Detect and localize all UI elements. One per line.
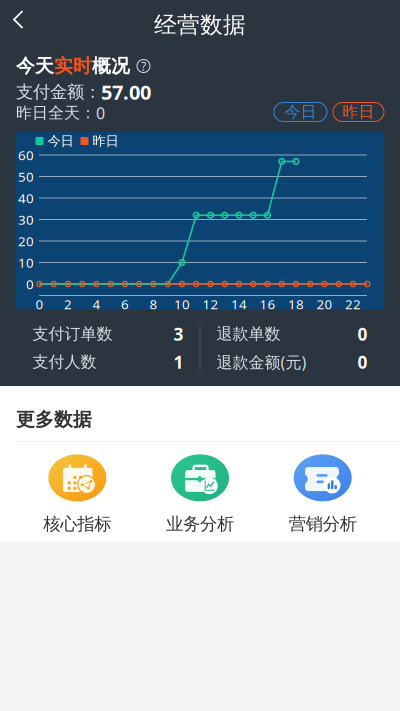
staticText: 0 bbox=[35, 295, 43, 313]
staticText: 40 bbox=[18, 189, 34, 207]
staticText: 支付金额： bbox=[16, 81, 101, 103]
staticText: 16 bbox=[259, 295, 275, 313]
staticText: 14 bbox=[231, 295, 247, 313]
staticText: 1 bbox=[173, 350, 183, 373]
staticText: 0 bbox=[357, 350, 367, 373]
staticText: 10 bbox=[18, 254, 34, 271]
staticText: 18 bbox=[288, 295, 304, 313]
staticText: 核心指标 bbox=[43, 513, 111, 535]
staticText: 业务分析 bbox=[166, 513, 234, 535]
staticText: 退款单数 bbox=[216, 324, 280, 344]
button[interactable]: Back bbox=[10, 8, 44, 42]
staticText: 57.00 bbox=[101, 79, 151, 105]
button[interactable]: 业务分析 bbox=[139, 454, 261, 535]
staticText: 12 bbox=[202, 295, 218, 313]
staticText: 支付订单数 bbox=[32, 324, 112, 344]
staticText: 昨日 bbox=[92, 133, 118, 149]
button[interactable]: 核心指标 bbox=[16, 454, 139, 535]
button[interactable]: 今日 bbox=[274, 102, 327, 121]
staticText: 50 bbox=[18, 168, 34, 185]
staticText: 0 bbox=[96, 102, 105, 124]
staticText: 更多数据 bbox=[16, 408, 92, 431]
staticText: 营销分析 bbox=[289, 513, 357, 535]
staticText: 今日 bbox=[284, 102, 316, 122]
staticText: 经营数据 bbox=[154, 11, 246, 39]
button[interactable]: 营销分析 bbox=[261, 454, 384, 535]
staticText: 概况 bbox=[92, 54, 130, 77]
staticText: 3 bbox=[173, 322, 183, 345]
button[interactable]: Help bbox=[130, 57, 152, 74]
staticText: 支付人数 bbox=[32, 352, 96, 372]
staticText: 2 bbox=[64, 295, 72, 313]
staticText: 实时 bbox=[54, 54, 92, 77]
staticText: 22 bbox=[345, 295, 361, 313]
staticText: 30 bbox=[18, 211, 34, 228]
staticText: 昨日 bbox=[342, 102, 374, 122]
staticText: 6 bbox=[121, 295, 129, 313]
staticText: 60 bbox=[18, 146, 34, 164]
staticText: 昨日全天： bbox=[16, 103, 96, 123]
staticText: 今日 bbox=[47, 133, 73, 149]
staticText: 4 bbox=[92, 295, 100, 313]
staticText: 退款金额(元) bbox=[216, 351, 306, 373]
staticText: 10 bbox=[174, 295, 190, 313]
staticText: 8 bbox=[149, 295, 157, 313]
button[interactable]: 昨日 bbox=[333, 102, 384, 121]
staticText: 今天 bbox=[16, 54, 54, 77]
staticText: 0 bbox=[357, 322, 367, 345]
staticText: ? bbox=[141, 58, 146, 74]
staticText: 0 bbox=[26, 275, 34, 293]
staticText: 20 bbox=[18, 232, 34, 250]
staticText: 20 bbox=[316, 295, 332, 313]
